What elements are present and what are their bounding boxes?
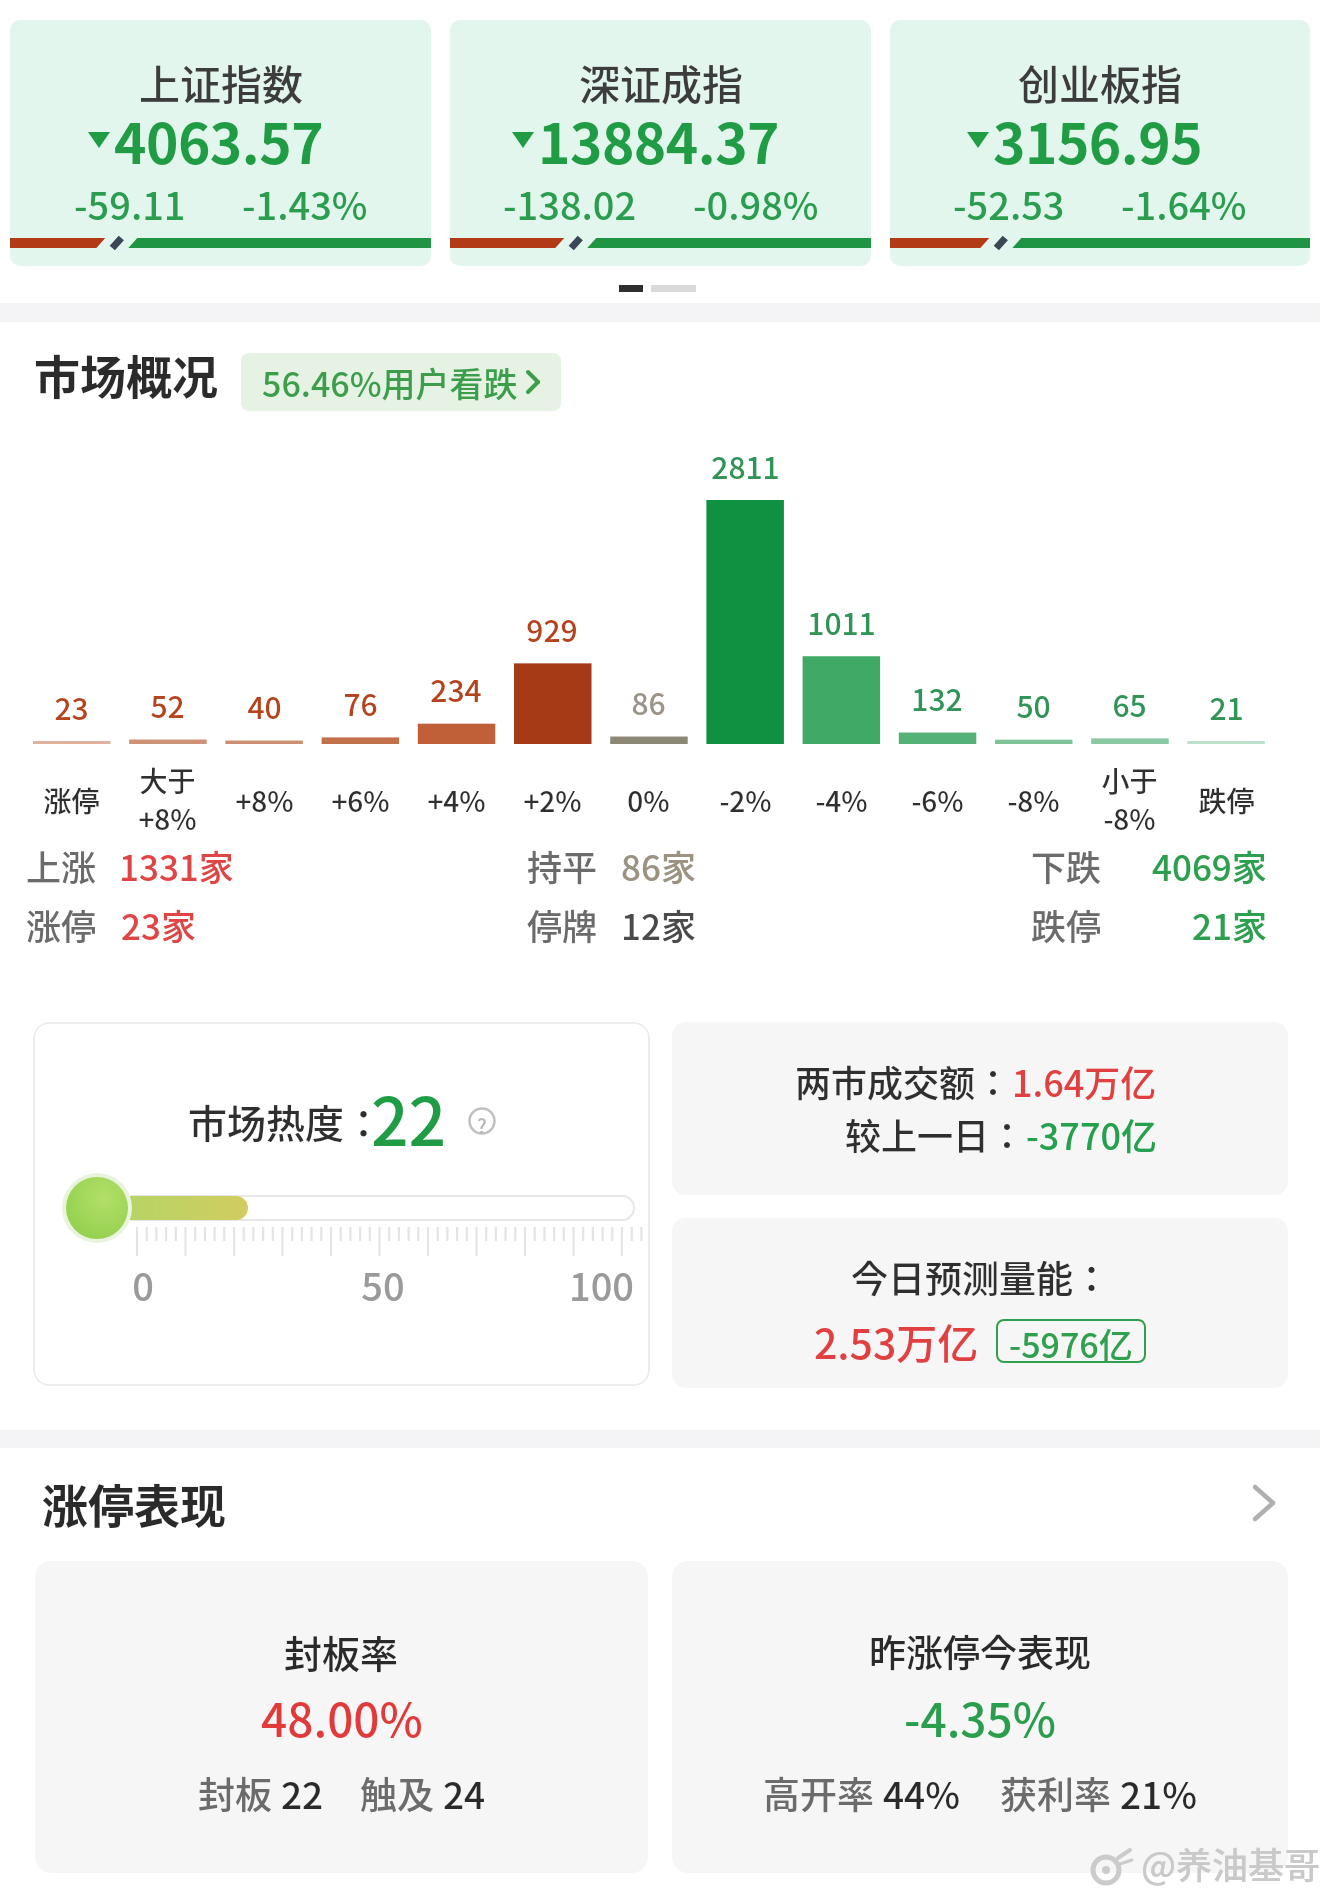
staticText: 86 [631,680,666,723]
staticText: -1.64% [1121,176,1247,231]
staticText: 100 [569,1257,634,1312]
staticText: 触及 [360,1766,443,1820]
staticText: 昨涨停今表现 [869,1624,1091,1678]
staticText: 1011 [807,600,876,643]
staticText: 跌停 [1198,780,1255,821]
staticText: +8% [235,780,294,821]
staticText: -4% [815,780,868,821]
staticText: 21% [1120,1766,1197,1820]
staticText: 48.00% [261,1684,423,1751]
button[interactable]: 两市成交额： [672,1022,1288,1195]
staticText: 2.53万亿 [814,1311,979,1370]
staticText: -52.53 [953,176,1065,231]
staticText: -3770亿 [1026,1108,1157,1160]
staticText: 22 [281,1766,324,1820]
button[interactable]: 上证指数 [10,20,431,266]
button[interactable]: 涨停表现 [0,1467,1320,1539]
staticText: 13884.37 [538,100,780,180]
staticText: 23 [54,685,89,728]
staticText: 23家 [121,899,196,950]
staticText: 44% [883,1766,960,1820]
staticText: 两市成交额： [795,1055,1012,1107]
staticText: 929 [526,607,578,650]
staticText: 1331家 [119,840,234,891]
staticText: 12家 [621,899,696,950]
staticText: 市场热度： [188,1093,384,1149]
staticText: 涨停 [43,780,100,821]
button[interactable]: 深证成指 [450,20,871,266]
staticText: +6% [331,780,390,821]
button[interactable]: 56.46%用户看跌 [241,353,561,411]
staticText: 56.46%用户看跌 [262,358,518,407]
staticText: 上证指数 [139,52,303,111]
staticText: 234 [430,667,482,710]
staticText: +4% [427,780,486,821]
staticText: ? [477,1111,487,1140]
staticText: 停牌 [527,899,598,950]
staticText: -6% [911,780,964,821]
staticText: -5976亿 [1009,1319,1133,1363]
staticText: 涨停 [26,899,97,950]
staticText: -138.02 [503,176,637,231]
staticText: 下跌 [1031,840,1102,891]
staticText: 获利率 [1000,1766,1120,1820]
staticText: +2% [523,780,582,821]
staticText: 52 [150,683,185,726]
button[interactable]: 今日预测量能： [672,1218,1288,1388]
staticText: 创业板指 [1018,52,1182,111]
button[interactable]: 封板率 [35,1561,648,1873]
staticText: -59.11 [74,176,186,231]
staticText: 86家 [621,840,696,891]
staticText: 21 [1209,685,1244,728]
staticText: 22 [371,1069,447,1165]
staticText: -4.35% [904,1684,1056,1751]
staticText: 2811 [711,444,780,487]
staticText: -0.98% [693,176,819,231]
staticText: 1.64万亿 [1012,1055,1157,1107]
staticText: 今日预测量能： [851,1250,1110,1304]
staticText: 4069家 [1152,840,1267,891]
staticText: 小于 -8% [1101,760,1158,838]
button[interactable]: 昨涨停今表现 [672,1561,1288,1873]
staticText: 跌停 [1031,899,1102,950]
staticText: 涨停表现 [42,1470,226,1537]
staticText: 高开率 [763,1766,883,1820]
staticText: -8% [1007,780,1060,821]
staticText: 市场概况 [34,341,218,408]
staticText: -2% [719,780,772,821]
staticText: 50 [361,1257,405,1312]
staticText: 21家 [1192,899,1267,950]
staticText: 65 [1112,682,1147,725]
staticText: 40 [247,684,282,727]
staticText: 深证成指 [579,52,743,111]
staticText: 较上一日： [845,1108,1026,1160]
staticText: 24 [443,1766,486,1820]
staticText: @养油基哥 [1141,1837,1320,1889]
staticText: 大于 +8% [138,760,197,838]
staticText: 76 [343,681,378,724]
staticText: 封板 [198,1766,281,1820]
staticText: 持平 [527,840,598,891]
staticText: 4063.57 [114,100,324,180]
button[interactable]: 创业板指 [890,20,1310,266]
staticText: 0% [627,780,670,821]
button[interactable]: 市场热度： [33,1022,650,1386]
staticText: 0 [132,1257,154,1312]
staticText: 封板率 [284,1624,399,1679]
staticText: 132 [911,676,963,719]
staticText: -1.43% [242,176,368,231]
staticText: 3156.95 [993,100,1203,180]
staticText: 上涨 [26,840,97,891]
staticText: 50 [1016,683,1051,726]
